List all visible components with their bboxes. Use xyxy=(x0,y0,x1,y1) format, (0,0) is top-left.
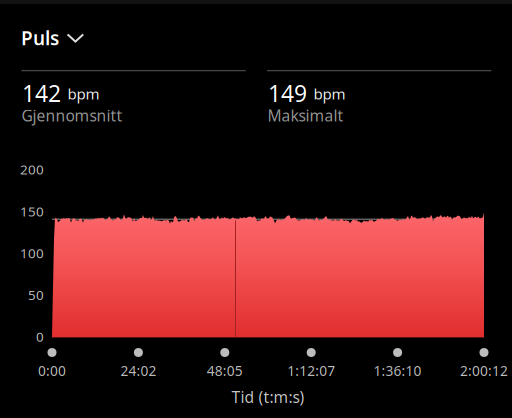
staticText: Tid (t:m:s) xyxy=(231,386,304,407)
staticText: 50 xyxy=(28,286,44,304)
staticText: 1:36:10 xyxy=(374,361,422,380)
staticText: 100 xyxy=(20,244,44,262)
staticText: 2:00:12 xyxy=(460,361,508,380)
staticText: bpm xyxy=(313,83,345,104)
staticText: 200 xyxy=(20,160,44,178)
staticText: Gjennomsnitt xyxy=(21,105,122,126)
staticText: 1:12:07 xyxy=(287,361,335,380)
staticText: 0 xyxy=(36,327,44,346)
staticText: Maksimalt xyxy=(267,105,343,126)
staticText: 48:05 xyxy=(207,361,243,380)
staticText: bpm xyxy=(67,83,99,104)
staticText: 149 xyxy=(268,78,307,109)
staticText: Puls xyxy=(21,25,59,51)
staticText: 0:00 xyxy=(38,361,66,380)
staticText: 142 xyxy=(22,78,61,109)
staticText: 24:02 xyxy=(120,361,156,380)
staticText: 150 xyxy=(20,202,44,220)
button[interactable]: Puls xyxy=(19,21,86,55)
